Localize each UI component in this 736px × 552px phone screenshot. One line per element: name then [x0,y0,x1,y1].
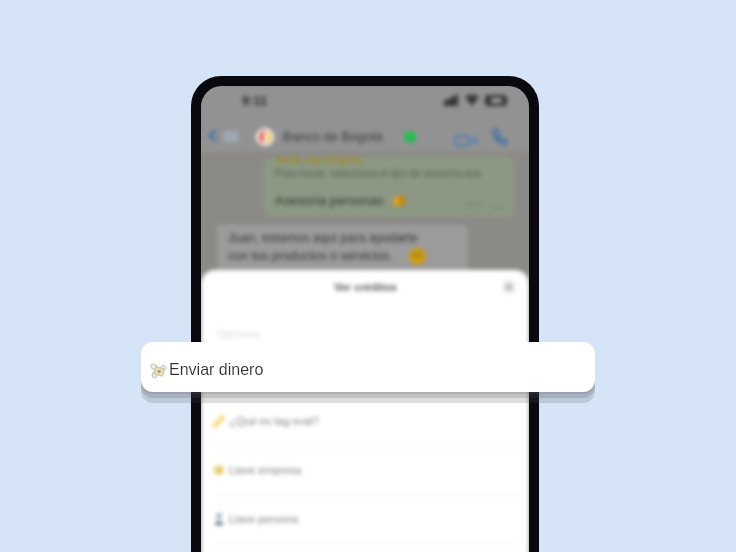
button[interactable]: Back [205,128,220,143]
staticText: ¿Qué es tag eval? [229,415,319,427]
button[interactable]: Close [501,279,517,295]
button[interactable]: Call [490,128,508,146]
staticText: Opciones [218,329,261,340]
button[interactable]: ¿Qué es tag eval? [201,397,529,446]
staticText: Llave persona [229,513,299,525]
staticText: Banco de Bogotá [283,129,383,144]
staticText: Enviar dinero [169,361,264,379]
staticText: Llave empresa [229,464,302,476]
button[interactable]: Video call [454,129,478,153]
staticText: Ver créditos [334,281,397,293]
staticText: ¡Hola, soy Bogotá! [275,157,364,165]
button[interactable]: Llave persona [201,495,529,544]
staticText: Para iniciar, selecciona el tipo de ases… [275,168,482,179]
staticText: Juan, estamos aquí para ayudarte con tus… [228,231,418,263]
button[interactable]: Llave empresa [201,446,529,495]
button[interactable]: Enviar dinero [141,342,595,392]
staticText: 9:11 [242,93,268,108]
staticText: Asesoría personas [275,193,384,208]
